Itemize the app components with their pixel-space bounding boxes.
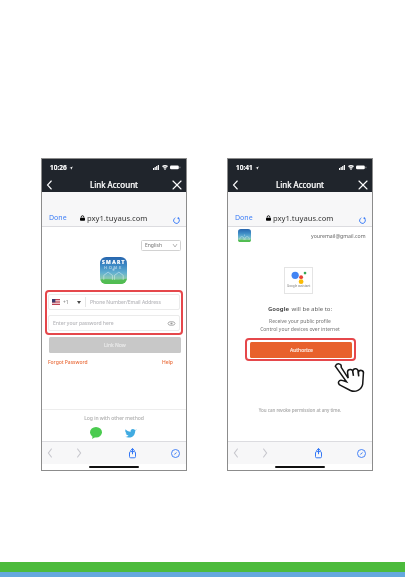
- button[interactable]: Done: [49, 213, 67, 223]
- staticText: Log in with other method: [42, 415, 186, 422]
- staticText: Enter your password here: [53, 320, 114, 327]
- button[interactable]: Reload: [357, 215, 367, 225]
- staticText: Receive your public profile: [228, 318, 372, 325]
- button[interactable]: Enter your password here: [48, 315, 180, 331]
- staticText: Google assistant: [287, 284, 311, 288]
- staticText: +1: [63, 299, 69, 306]
- button[interactable]: Back: [228, 177, 243, 192]
- button[interactable]: Close: [355, 177, 370, 192]
- button[interactable]: Authorize: [250, 342, 352, 358]
- button[interactable]: Link Now: [49, 337, 181, 353]
- staticText: 10:26: [50, 163, 67, 172]
- staticText: Link Account: [90, 179, 138, 190]
- button[interactable]: Help: [162, 359, 173, 366]
- button[interactable]: Back: [229, 446, 243, 460]
- staticText: 10:41: [236, 163, 253, 172]
- button[interactable]: Back: [42, 177, 57, 192]
- button[interactable]: Close: [169, 177, 184, 192]
- button[interactable]: Bookmarks: [168, 446, 182, 460]
- button[interactable]: Done: [235, 213, 253, 223]
- button[interactable]: Twitter: [124, 426, 138, 440]
- button[interactable]: Bookmarks: [354, 446, 368, 460]
- staticText: pxy1.tuyaus.com: [273, 213, 334, 223]
- button[interactable]: Share: [125, 446, 139, 460]
- staticText: will be able to:: [290, 305, 333, 313]
- staticText: Link Account: [276, 179, 324, 190]
- button[interactable]: Forgot Password: [48, 359, 88, 366]
- button[interactable]: Forward: [258, 446, 272, 460]
- staticText: English: [145, 242, 163, 249]
- button[interactable]: WeChat: [89, 426, 103, 440]
- staticText: Phone Number/Email Address: [90, 299, 161, 306]
- button[interactable]: Share: [311, 446, 325, 460]
- button[interactable]: Back: [43, 446, 57, 460]
- staticText: SMART: [102, 259, 126, 266]
- staticText: Google: [268, 305, 290, 313]
- staticText: Link Now: [104, 342, 126, 349]
- staticText: Control your devices over internet: [228, 326, 372, 333]
- button[interactable]: Forward: [72, 446, 86, 460]
- staticText: Authorize: [290, 347, 313, 354]
- button[interactable]: Reload: [171, 215, 181, 225]
- staticText: youremail@gmail.com: [311, 232, 366, 239]
- staticText: HOME: [104, 265, 123, 271]
- button[interactable]: English: [141, 240, 181, 251]
- staticText: You can revoke permission at any time.: [228, 407, 372, 413]
- button[interactable]: +1: [48, 294, 180, 310]
- staticText: pxy1.tuyaus.com: [87, 213, 148, 223]
